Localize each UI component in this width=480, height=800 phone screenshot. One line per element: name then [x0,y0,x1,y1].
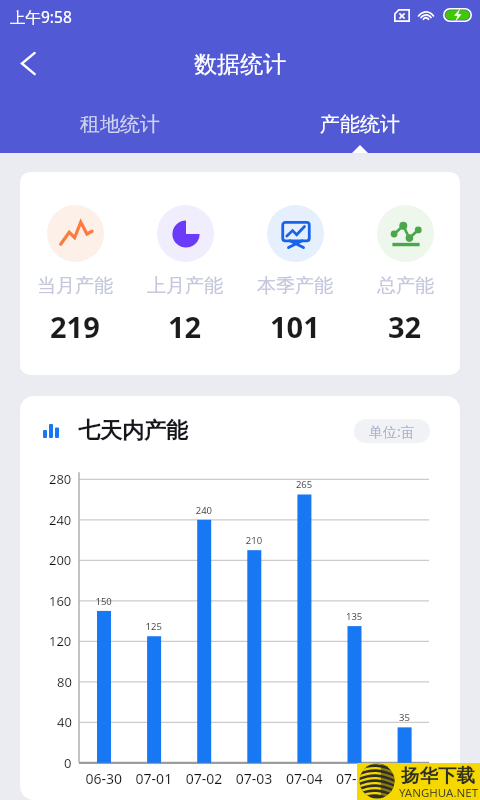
button[interactable]: 当月产能 [20,172,130,375]
button[interactable]: 单位:亩 [354,419,430,443]
button[interactable]: 本季产能 [240,172,350,375]
staticText: 32 [388,307,422,346]
button[interactable]: 租地统计 [0,98,240,153]
staticText: 上午9:58 [10,6,72,27]
button[interactable]: 总产能 [350,172,460,375]
staticText: 单位:亩 [369,422,415,441]
staticText: 数据统计 [194,50,286,79]
button[interactable]: 上月产能 [130,172,240,375]
staticText: 七天内产能 [78,417,188,445]
button[interactable]: 返回 [11,46,45,80]
staticText: 总产能 [377,274,434,298]
staticText: 本季产能 [257,274,333,298]
staticText: 产能统计 [320,112,400,137]
button[interactable]: 产能统计 [240,98,480,153]
staticText: 当月产能 [37,274,113,298]
staticText: 219 [50,307,100,346]
staticText: 12 [168,307,202,346]
staticText: 租地统计 [80,112,160,137]
staticText: 101 [270,307,320,346]
staticText: 上月产能 [147,274,223,298]
